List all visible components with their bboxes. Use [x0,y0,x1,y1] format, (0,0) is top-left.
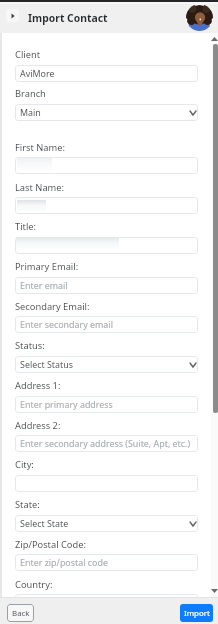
button[interactable]: Enter primary address [15,396,198,413]
staticText: Enter secondary email [20,318,113,330]
staticText: Client [15,48,41,61]
staticText: Select Country [20,596,81,608]
staticText: Zip/Postal Code: [15,538,86,551]
staticText: Import [184,608,210,619]
staticText: Enter primary address [20,398,113,410]
staticText: Main [20,106,41,118]
button[interactable]: AviMore [15,65,198,82]
staticText: Select State [20,517,69,529]
staticText: Title: [15,220,37,233]
button[interactable]: Select Country [15,594,198,611]
button[interactable] [15,237,198,254]
button[interactable]: Select State [15,515,198,532]
button[interactable]: Expand menu [6,9,19,22]
staticText: City: [15,458,34,471]
button[interactable]: Profile [186,4,213,31]
button[interactable] [15,475,198,492]
staticText: Last Name: [15,181,65,194]
staticText: First Name: [15,141,65,154]
staticText: State: [15,498,40,511]
button[interactable] [15,197,198,214]
staticText: Import Contact [28,11,108,25]
staticText: Enter secondary address (Suite, Apt, etc… [20,437,191,449]
button[interactable] [15,157,198,174]
staticText: Primary Email: [15,260,79,273]
button[interactable]: Main [15,104,198,121]
button[interactable]: Scroll bar [211,33,218,597]
staticText: Enter zip/postal code [20,556,108,568]
button[interactable]: Enter secondary email [15,316,198,333]
staticText: Address 2: [15,419,61,432]
staticText: Branch [15,87,46,100]
button[interactable]: Enter secondary address (Suite, Apt, etc… [15,435,198,452]
button[interactable]: Select Status [15,356,198,373]
staticText: Secondary Email: [15,300,90,313]
staticText: Enter email [20,279,68,291]
staticText: Address 1: [15,379,61,392]
staticText: AviMore [20,67,55,79]
button[interactable]: Enter email [15,277,198,294]
button[interactable]: Back [7,604,34,622]
staticText: Country: [15,578,53,591]
button[interactable]: Enter zip/postal code [15,554,198,571]
button[interactable]: Import [180,604,213,622]
staticText: Status: [15,339,45,352]
staticText: Select Status [20,358,74,370]
staticText: Back [12,608,30,619]
